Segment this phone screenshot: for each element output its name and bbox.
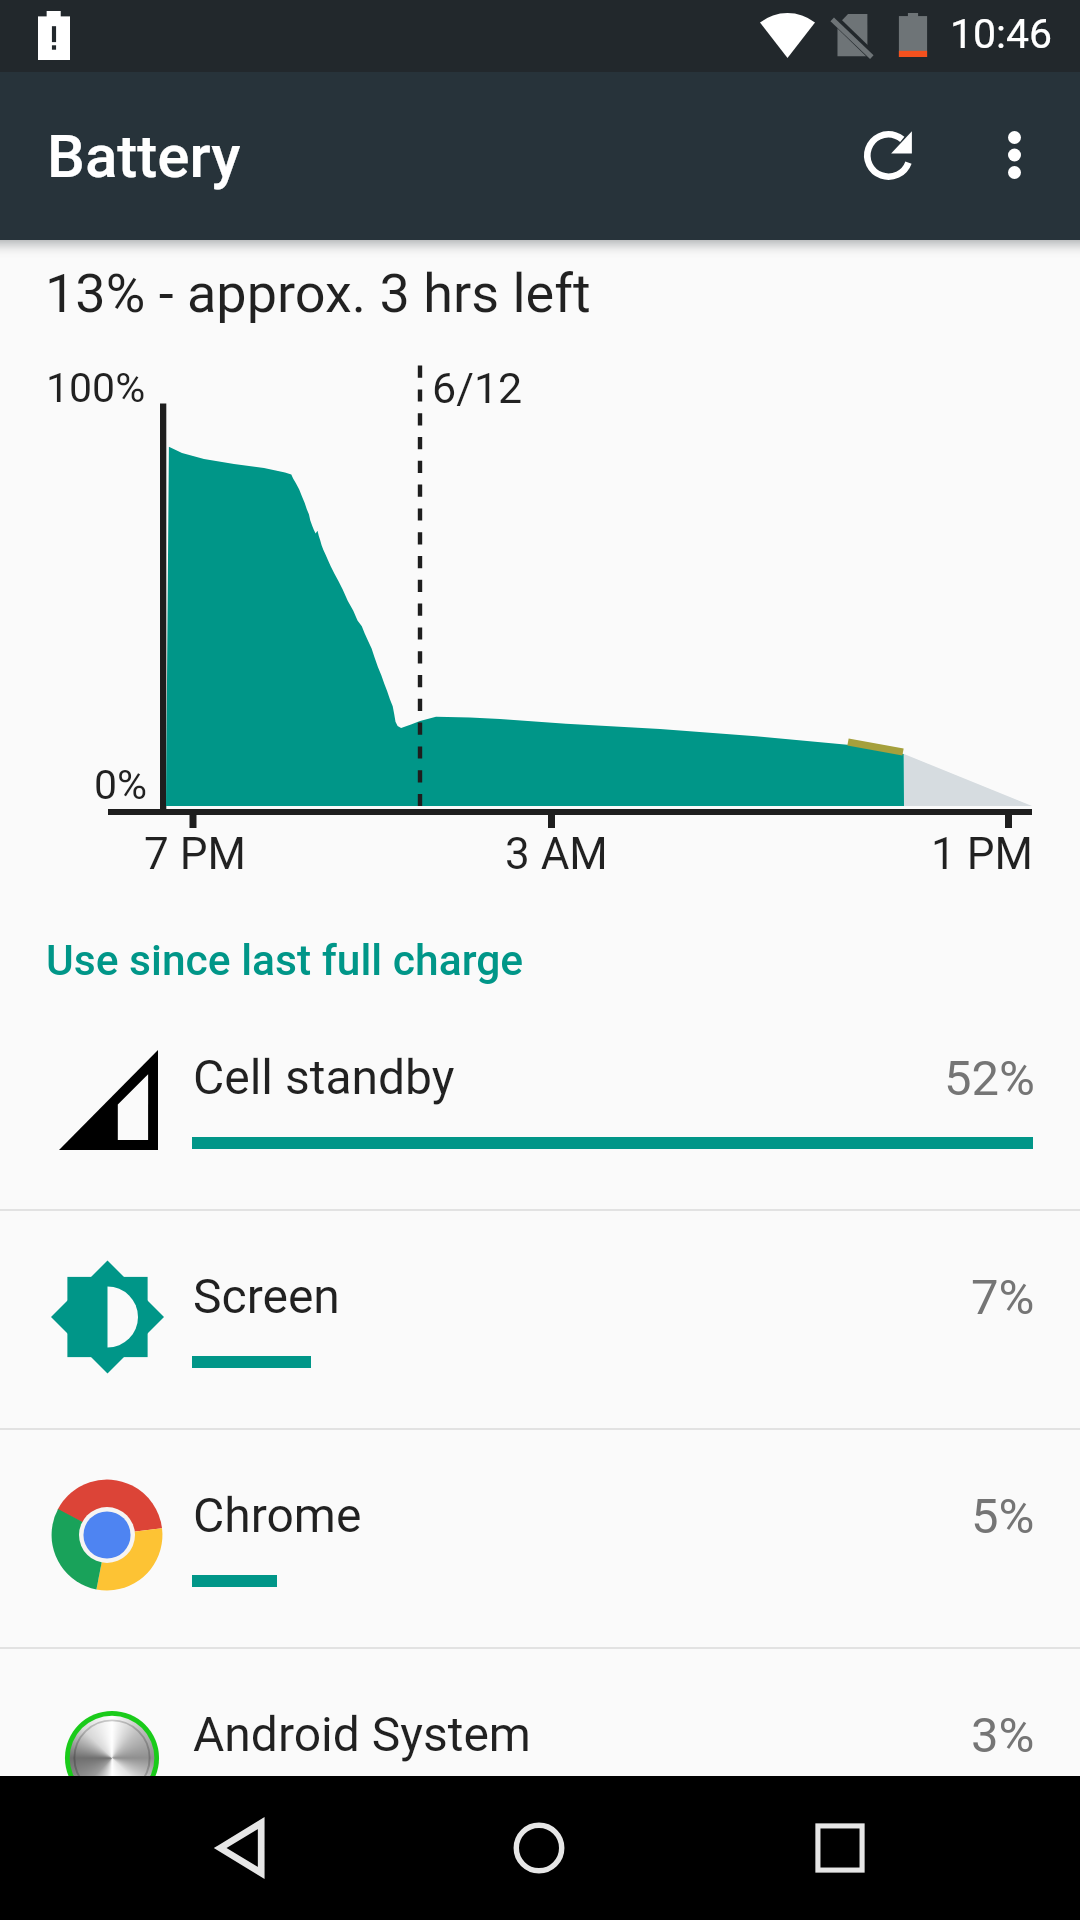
button[interactable]: Home [479,1788,599,1908]
staticText: 10:46 [950,10,1053,58]
button[interactable]: Cell standby [0,992,1080,1209]
button[interactable]: Chrome [0,1430,1080,1647]
button[interactable]: Refresh [829,96,948,215]
staticText: Chrome [193,1487,362,1543]
staticText: Screen [193,1268,340,1324]
staticText: 7 PM [144,828,246,880]
staticText: 52% [944,1050,1035,1107]
button[interactable]: More options [955,96,1073,214]
staticText: 5% [971,1488,1035,1545]
button[interactable]: Recents [780,1788,900,1908]
button[interactable]: Screen [0,1211,1080,1428]
staticText: 13% - approx. 3 hrs left [45,262,591,325]
staticText: Cell standby [193,1049,455,1105]
staticText: 6/12 [432,363,523,413]
staticText: 7% [971,1269,1035,1326]
staticText: 1 PM [931,828,1033,880]
staticText: 100% [46,364,146,412]
staticText: 3% [971,1707,1035,1764]
staticText: Battery [47,121,241,191]
staticText: 0% [94,761,148,809]
button[interactable]: Back [182,1788,302,1908]
staticText: Use since last full charge [46,936,524,986]
staticText: 3 AM [505,828,608,880]
button[interactable]: Android System [0,1649,1080,1776]
staticText: Android System [193,1706,531,1762]
